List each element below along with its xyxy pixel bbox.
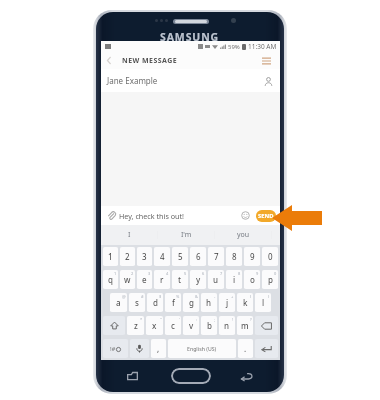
staticText: 1 <box>108 251 113 262</box>
button[interactable]: n <box>219 316 235 335</box>
staticText: c <box>171 320 175 331</box>
button[interactable]: 7 <box>208 247 224 266</box>
button[interactable]: p <box>262 270 278 289</box>
button[interactable]: . <box>238 339 253 358</box>
button[interactable]: h <box>201 293 217 312</box>
button[interactable]: v <box>183 316 199 335</box>
button[interactable]: SEND <box>256 210 276 222</box>
button[interactable]: d <box>147 293 163 312</box>
button[interactable]: w <box>120 270 135 289</box>
button[interactable]: r <box>154 270 170 289</box>
staticText: d <box>153 297 158 308</box>
staticText: * <box>140 317 143 322</box>
button[interactable]: Emoji <box>239 209 252 222</box>
button[interactable]: 5 <box>172 247 188 266</box>
staticText: , <box>157 343 160 354</box>
staticText: b <box>207 320 212 331</box>
staticText: e <box>142 274 147 285</box>
staticText: Hey, check this out! <box>119 211 185 221</box>
staticText: 11:30 AM <box>248 42 277 51</box>
button[interactable]: Back <box>101 52 117 69</box>
staticText: & <box>195 294 198 299</box>
staticText: # <box>141 294 144 299</box>
button[interactable]: Voice input <box>130 339 149 358</box>
button[interactable]: Attach <box>105 209 118 222</box>
button[interactable]: k <box>237 293 253 312</box>
staticText: 7 <box>220 271 223 276</box>
button[interactable]: c <box>165 316 181 335</box>
button[interactable]: q <box>103 270 118 289</box>
button[interactable]: Enter <box>255 339 278 358</box>
staticText: ; <box>214 317 216 322</box>
staticText: 9 <box>250 251 255 262</box>
button[interactable]: y <box>190 270 206 289</box>
staticText: - <box>214 294 216 299</box>
staticText: SEND <box>258 212 274 220</box>
staticText: u <box>213 274 219 285</box>
staticText: ( <box>250 294 252 299</box>
button[interactable]: o <box>244 270 260 289</box>
button[interactable]: English (US) <box>168 339 236 358</box>
staticText: 3 <box>148 271 151 276</box>
staticText: you <box>237 230 250 240</box>
button[interactable]: l <box>255 293 271 312</box>
button[interactable]: a <box>110 293 127 312</box>
staticText: a <box>116 297 121 308</box>
button[interactable]: I <box>101 225 157 245</box>
button[interactable]: x <box>146 316 163 335</box>
button[interactable]: Jane Example <box>101 69 280 92</box>
staticText: Jane Example <box>107 75 158 86</box>
button[interactable]: , <box>151 339 166 358</box>
button[interactable]: Menu <box>258 52 274 69</box>
staticText: : <box>196 317 198 322</box>
button[interactable]: b <box>201 316 217 335</box>
staticText: 4 <box>166 271 169 276</box>
button[interactable]: Recents <box>124 368 140 384</box>
staticText: n <box>224 320 230 331</box>
button[interactable]: Back <box>239 368 255 384</box>
staticText: i <box>233 274 236 285</box>
staticText: q <box>108 274 113 285</box>
staticText: $ <box>159 294 162 299</box>
button[interactable]: Shift <box>103 316 125 335</box>
button[interactable]: s <box>129 293 145 312</box>
button[interactable]: Symbols <box>103 339 128 358</box>
staticText: x <box>152 320 157 331</box>
staticText: 8 <box>232 251 237 262</box>
staticText: 0 <box>274 271 277 276</box>
staticText: 5 <box>184 271 187 276</box>
staticText: 6 <box>202 271 205 276</box>
button[interactable]: 6 <box>190 247 206 266</box>
button[interactable]: 1 <box>103 247 118 266</box>
button[interactable]: u <box>208 270 224 289</box>
button[interactable]: e <box>137 270 152 289</box>
button[interactable]: 3 <box>137 247 152 266</box>
button[interactable]: 8 <box>226 247 242 266</box>
button[interactable]: m <box>237 316 253 335</box>
staticText: j <box>226 297 229 308</box>
button[interactable]: g <box>183 293 199 312</box>
button[interactable]: Delete <box>255 316 278 335</box>
button[interactable]: j <box>219 293 235 312</box>
button[interactable]: z <box>127 316 144 335</box>
button[interactable]: t <box>172 270 188 289</box>
staticText: . <box>244 343 247 354</box>
button[interactable]: 4 <box>154 247 170 266</box>
staticText: 4 <box>160 251 165 262</box>
staticText: 7 <box>214 251 219 262</box>
button[interactable]: 2 <box>120 247 135 266</box>
staticText: 1 <box>114 271 117 276</box>
button[interactable]: i <box>226 270 242 289</box>
staticText: 0 <box>268 251 273 262</box>
button[interactable]: I'm <box>158 225 214 245</box>
button[interactable]: Add contact <box>261 74 275 88</box>
button[interactable]: 0 <box>262 247 278 266</box>
staticText: k <box>243 297 248 308</box>
staticText: v <box>189 320 194 331</box>
staticText: w <box>124 274 131 285</box>
button[interactable]: you <box>215 225 271 245</box>
button[interactable]: 9 <box>244 247 260 266</box>
button[interactable]: f <box>165 293 181 312</box>
button[interactable]: Home <box>171 368 211 384</box>
staticText: English (US) <box>187 345 217 352</box>
